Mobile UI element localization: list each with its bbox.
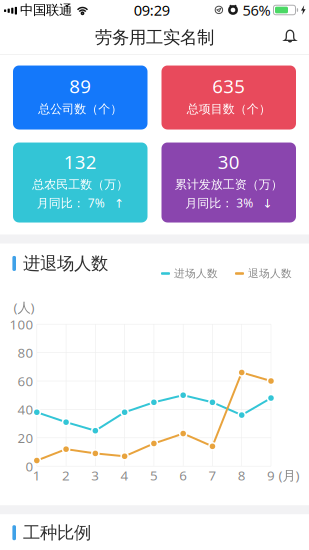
staticText: 工种比例 [23, 522, 91, 543]
staticText: 5 [150, 466, 158, 484]
staticText: (月) [278, 466, 299, 484]
button[interactable]: 635 [161, 65, 296, 129]
staticText: 7 [208, 466, 216, 484]
staticText: 中国联通 [20, 2, 72, 18]
staticText: 56% [242, 0, 270, 20]
staticText: 进场人数 [174, 267, 218, 280]
staticText: 月同比： 3% ↓ [185, 195, 272, 211]
staticText: 09:29 [134, 0, 170, 20]
staticText: 3 [91, 466, 99, 484]
staticText: 635 [212, 74, 245, 98]
staticText: 累计发放工资（万） [175, 177, 283, 192]
staticText: 4 [121, 466, 129, 484]
staticText: 60 [18, 372, 34, 390]
staticText: 80 [18, 344, 34, 361]
staticText: 2 [62, 466, 70, 484]
staticText: 20 [18, 429, 34, 447]
staticText: 月同比： 7% ↑ [37, 195, 124, 211]
staticText: 总项目数（个） [187, 101, 271, 116]
staticText: 退场人数 [248, 267, 292, 280]
staticText: 40 [18, 401, 34, 418]
staticText: 6 [179, 466, 187, 484]
staticText: 30 [218, 149, 240, 174]
staticText: 劳务用工实名制 [95, 27, 214, 48]
staticText: 89 [69, 74, 91, 98]
staticText: 总公司数（个） [38, 101, 122, 116]
staticText: 9 [267, 466, 275, 484]
staticText: 1 [33, 466, 41, 484]
staticText: 0 [26, 457, 34, 475]
button[interactable]: 89 [13, 65, 147, 129]
staticText: 132 [64, 149, 97, 174]
staticText: (人) [13, 298, 34, 316]
staticText: 100 [10, 315, 34, 333]
button[interactable]: 132 [13, 142, 147, 222]
staticText: 进退场人数 [23, 253, 108, 274]
button[interactable]: 30 [161, 142, 296, 222]
staticText: 8 [238, 466, 246, 484]
staticText: 总农民工数（万） [32, 177, 128, 192]
button[interactable]: 通知 [275, 21, 305, 54]
